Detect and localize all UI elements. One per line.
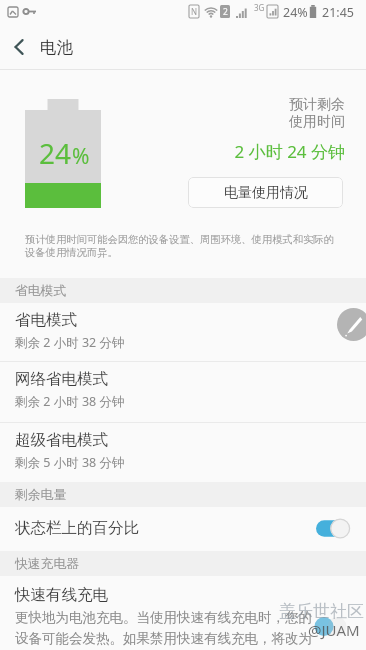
staticText: 21:45 — [322, 4, 354, 21]
staticText: 快速有线充电 — [15, 585, 108, 605]
staticText: 省电模式 — [15, 310, 77, 330]
button[interactable]: Back — [0, 27, 40, 67]
staticText: 24 — [39, 134, 72, 172]
button[interactable]: 网络省电模式 — [0, 362, 366, 420]
staticText: 盖乐世社区 — [279, 601, 364, 622]
staticText: @JUAM — [308, 620, 360, 640]
staticText: 剩余电量 — [15, 487, 67, 503]
staticText: 24% — [283, 4, 308, 21]
staticText: 电池 — [40, 37, 73, 58]
button[interactable]: 省电模式 — [0, 303, 366, 361]
staticText: 状态栏上的百分比 — [15, 518, 316, 538]
button[interactable]: 状态栏上的百分比 — [0, 505, 366, 551]
staticText: 更快地为电池充电。当使用快速有线充电时，您的 设备可能会发热。如果禁用快速有线充… — [15, 609, 312, 647]
staticText: 电量使用情况 — [224, 184, 308, 202]
staticText: 剩余 2 小时 38 分钟 — [15, 393, 125, 410]
staticText: 省电模式 — [15, 283, 67, 299]
staticText: 2 — [223, 6, 228, 18]
button[interactable]: Edit — [337, 308, 366, 341]
button[interactable]: 快速有线充电 — [0, 575, 366, 650]
staticText: N — [191, 6, 198, 17]
staticText: 超级省电模式 — [15, 430, 108, 450]
button[interactable]: 超级省电模式 — [0, 423, 366, 481]
staticText: 网络省电模式 — [15, 369, 108, 389]
button[interactable]: 电量使用情况 — [188, 177, 343, 208]
staticText: 剩余 5 小时 38 分钟 — [15, 454, 125, 471]
staticText: 快速充电器 — [15, 556, 79, 572]
staticText: 预计剩余 — [0, 96, 345, 114]
staticText: 预计使用时间可能会因您的设备设置、周围环境、使用模式和实际的 设备使用情况而异。 — [25, 233, 355, 259]
staticText: % — [72, 142, 90, 171]
staticText: 2 小时 24 分钟 — [0, 140, 345, 163]
staticText: 3G — [254, 2, 265, 13]
staticText: 使用时间 — [0, 113, 345, 131]
staticText: 剩余 2 小时 32 分钟 — [15, 334, 125, 351]
